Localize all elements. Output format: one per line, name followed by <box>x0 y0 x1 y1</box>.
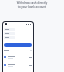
button[interactable] <box>4 28 15 31</box>
button[interactable] <box>4 61 32 69</box>
staticText: Withdraw cash directly to your bank acco… <box>1 1 63 9</box>
button[interactable] <box>4 32 15 35</box>
button[interactable]: Withdraw <box>4 43 32 47</box>
button[interactable] <box>4 36 15 39</box>
button[interactable] <box>4 53 32 61</box>
